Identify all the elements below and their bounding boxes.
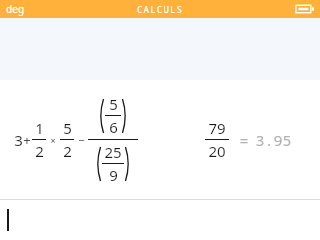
button[interactable] [0, 200, 320, 240]
staticText: 2 [63, 141, 72, 161]
staticText: 3 [14, 130, 23, 150]
staticText: = [239, 130, 249, 150]
staticText: 3.95 [255, 130, 292, 150]
button[interactable]: deg [6, 2, 24, 16]
staticText: 5 [63, 118, 72, 138]
button[interactable]: 3 [0, 80, 320, 199]
staticText: 5 [109, 94, 118, 114]
staticText: 25 [104, 142, 122, 162]
staticText: 2 [35, 141, 44, 161]
staticText: 20 [208, 141, 226, 161]
staticText: CALCULS [137, 3, 184, 15]
staticText: 79 [208, 118, 226, 138]
button[interactable]: Battery [296, 3, 314, 15]
staticText: 9 [109, 165, 118, 185]
staticText: 6 [109, 117, 118, 137]
staticText: 1 [35, 118, 44, 138]
staticText: − [78, 132, 85, 147]
staticText: + [23, 131, 31, 149]
staticText: × [50, 134, 56, 146]
